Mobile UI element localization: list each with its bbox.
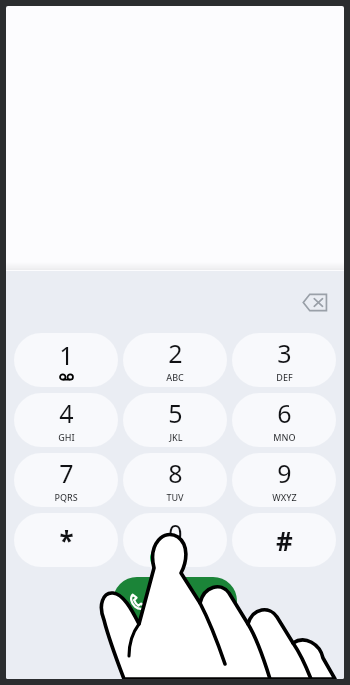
staticText: WXYZ (272, 491, 297, 503)
staticText: 5 (168, 396, 183, 430)
staticText: JKL (169, 431, 183, 443)
button[interactable]: 3 (232, 333, 336, 387)
staticText: 1 (59, 338, 74, 372)
button[interactable]: Backspace (294, 281, 336, 323)
staticText: * (59, 523, 74, 558)
staticText: 8 (168, 456, 183, 490)
button[interactable]: 6 (232, 393, 336, 447)
staticText: ABC (166, 371, 184, 383)
staticText: DEF (276, 371, 293, 383)
staticText: 4 (59, 396, 74, 430)
staticText: 9 (277, 456, 292, 490)
button[interactable]: 0 (123, 513, 227, 567)
button[interactable]: 9 (232, 453, 336, 507)
staticText: # (276, 523, 293, 558)
button[interactable]: 5 (123, 393, 227, 447)
button[interactable]: # (232, 513, 336, 567)
staticText: 2 (168, 336, 183, 370)
button[interactable]: 1 (14, 333, 118, 387)
staticText: GHI (58, 431, 75, 443)
button[interactable]: 音声 (113, 577, 237, 625)
button[interactable]: 8 (123, 453, 227, 507)
staticText: 7 (59, 456, 74, 490)
staticText: MNO (273, 431, 296, 443)
button[interactable]: * (14, 513, 118, 567)
button[interactable]: 7 (14, 453, 118, 507)
staticText: 6 (277, 396, 292, 430)
staticText: TUV (166, 491, 184, 503)
button[interactable]: 2 (123, 333, 227, 387)
staticText: 0 (168, 516, 183, 550)
staticText: PQRS (54, 491, 78, 503)
staticText: 3 (277, 336, 292, 370)
button[interactable]: 4 (14, 393, 118, 447)
